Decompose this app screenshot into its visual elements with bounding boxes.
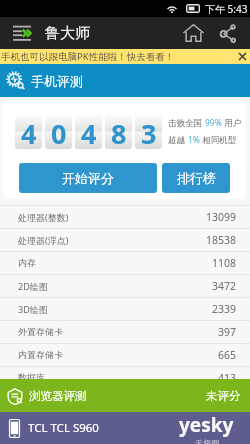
button[interactable]: 手机也可以跟电脑PK性能啦！快去看看！	[0, 49, 250, 64]
staticText: 鲁大师	[45, 24, 90, 43]
button[interactable]: Menu	[0, 17, 45, 49]
staticText: 4	[81, 115, 97, 149]
staticText: 外置存储卡	[18, 326, 63, 337]
staticText: 手机也可以跟电脑PK性能啦！快去看看！	[1, 50, 175, 63]
staticText: 1108	[212, 256, 237, 270]
staticText: 665	[218, 348, 237, 362]
staticText: 内置存储卡	[18, 349, 63, 360]
staticText: 2D绘图	[18, 280, 48, 292]
staticText: 天极网	[195, 438, 219, 444]
staticText: 99%	[205, 117, 222, 129]
staticText: yesky	[179, 412, 234, 438]
button[interactable]: Share	[213, 17, 250, 49]
button[interactable]: 2D绘图	[0, 274, 250, 297]
staticText: 手机评测	[31, 73, 83, 89]
staticText: 相同机型	[200, 134, 237, 146]
button[interactable]: 处理器(浮点)	[0, 228, 250, 251]
staticText: 数据库	[18, 372, 45, 383]
staticText: 13099	[206, 210, 237, 224]
staticText: TCL TCL S960	[28, 420, 99, 436]
staticText: 排行榜	[177, 170, 216, 186]
staticText: 浏览器评测	[29, 389, 87, 403]
staticText: 3D绘图	[18, 303, 48, 315]
staticText: 3	[141, 115, 157, 149]
staticText: 397	[218, 325, 237, 339]
staticText: 1%	[188, 134, 200, 146]
button[interactable]: 处理器(整数)	[0, 205, 250, 228]
staticText: 413	[218, 371, 237, 385]
staticText: 击败全国	[168, 117, 205, 129]
staticText: 处理器(整数)	[18, 211, 69, 223]
button[interactable]: 3D绘图	[0, 297, 250, 320]
button[interactable]: Home	[179, 17, 213, 49]
staticText: 开始评分	[62, 170, 114, 186]
button[interactable]: 内置存储卡	[0, 343, 250, 366]
button[interactable]: 开始评分	[19, 163, 157, 193]
staticText: 用户	[222, 117, 242, 129]
staticText: 处理器(浮点)	[18, 234, 69, 246]
button[interactable]: 内存	[0, 251, 250, 274]
button[interactable]: 排行榜	[162, 163, 230, 193]
button[interactable]: yesky	[0, 412, 250, 444]
staticText: 8	[111, 115, 127, 149]
staticText: 超越	[168, 134, 188, 146]
staticText: 18538	[206, 233, 237, 247]
button[interactable]: 手机评测	[0, 64, 250, 97]
staticText: 3472	[212, 279, 237, 293]
staticText: 4	[21, 115, 37, 149]
staticText: 0	[51, 115, 67, 149]
button[interactable]: 数据库	[0, 366, 250, 389]
staticText: 内存	[18, 257, 36, 268]
staticText: 未评分	[206, 389, 241, 403]
staticText: 下午 5:43	[205, 2, 248, 16]
button[interactable]: 外置存储卡	[0, 320, 250, 343]
button[interactable]: 浏览器评测	[0, 379, 250, 412]
button[interactable]: Close banner	[235, 49, 250, 64]
staticText: 2339	[212, 302, 237, 316]
